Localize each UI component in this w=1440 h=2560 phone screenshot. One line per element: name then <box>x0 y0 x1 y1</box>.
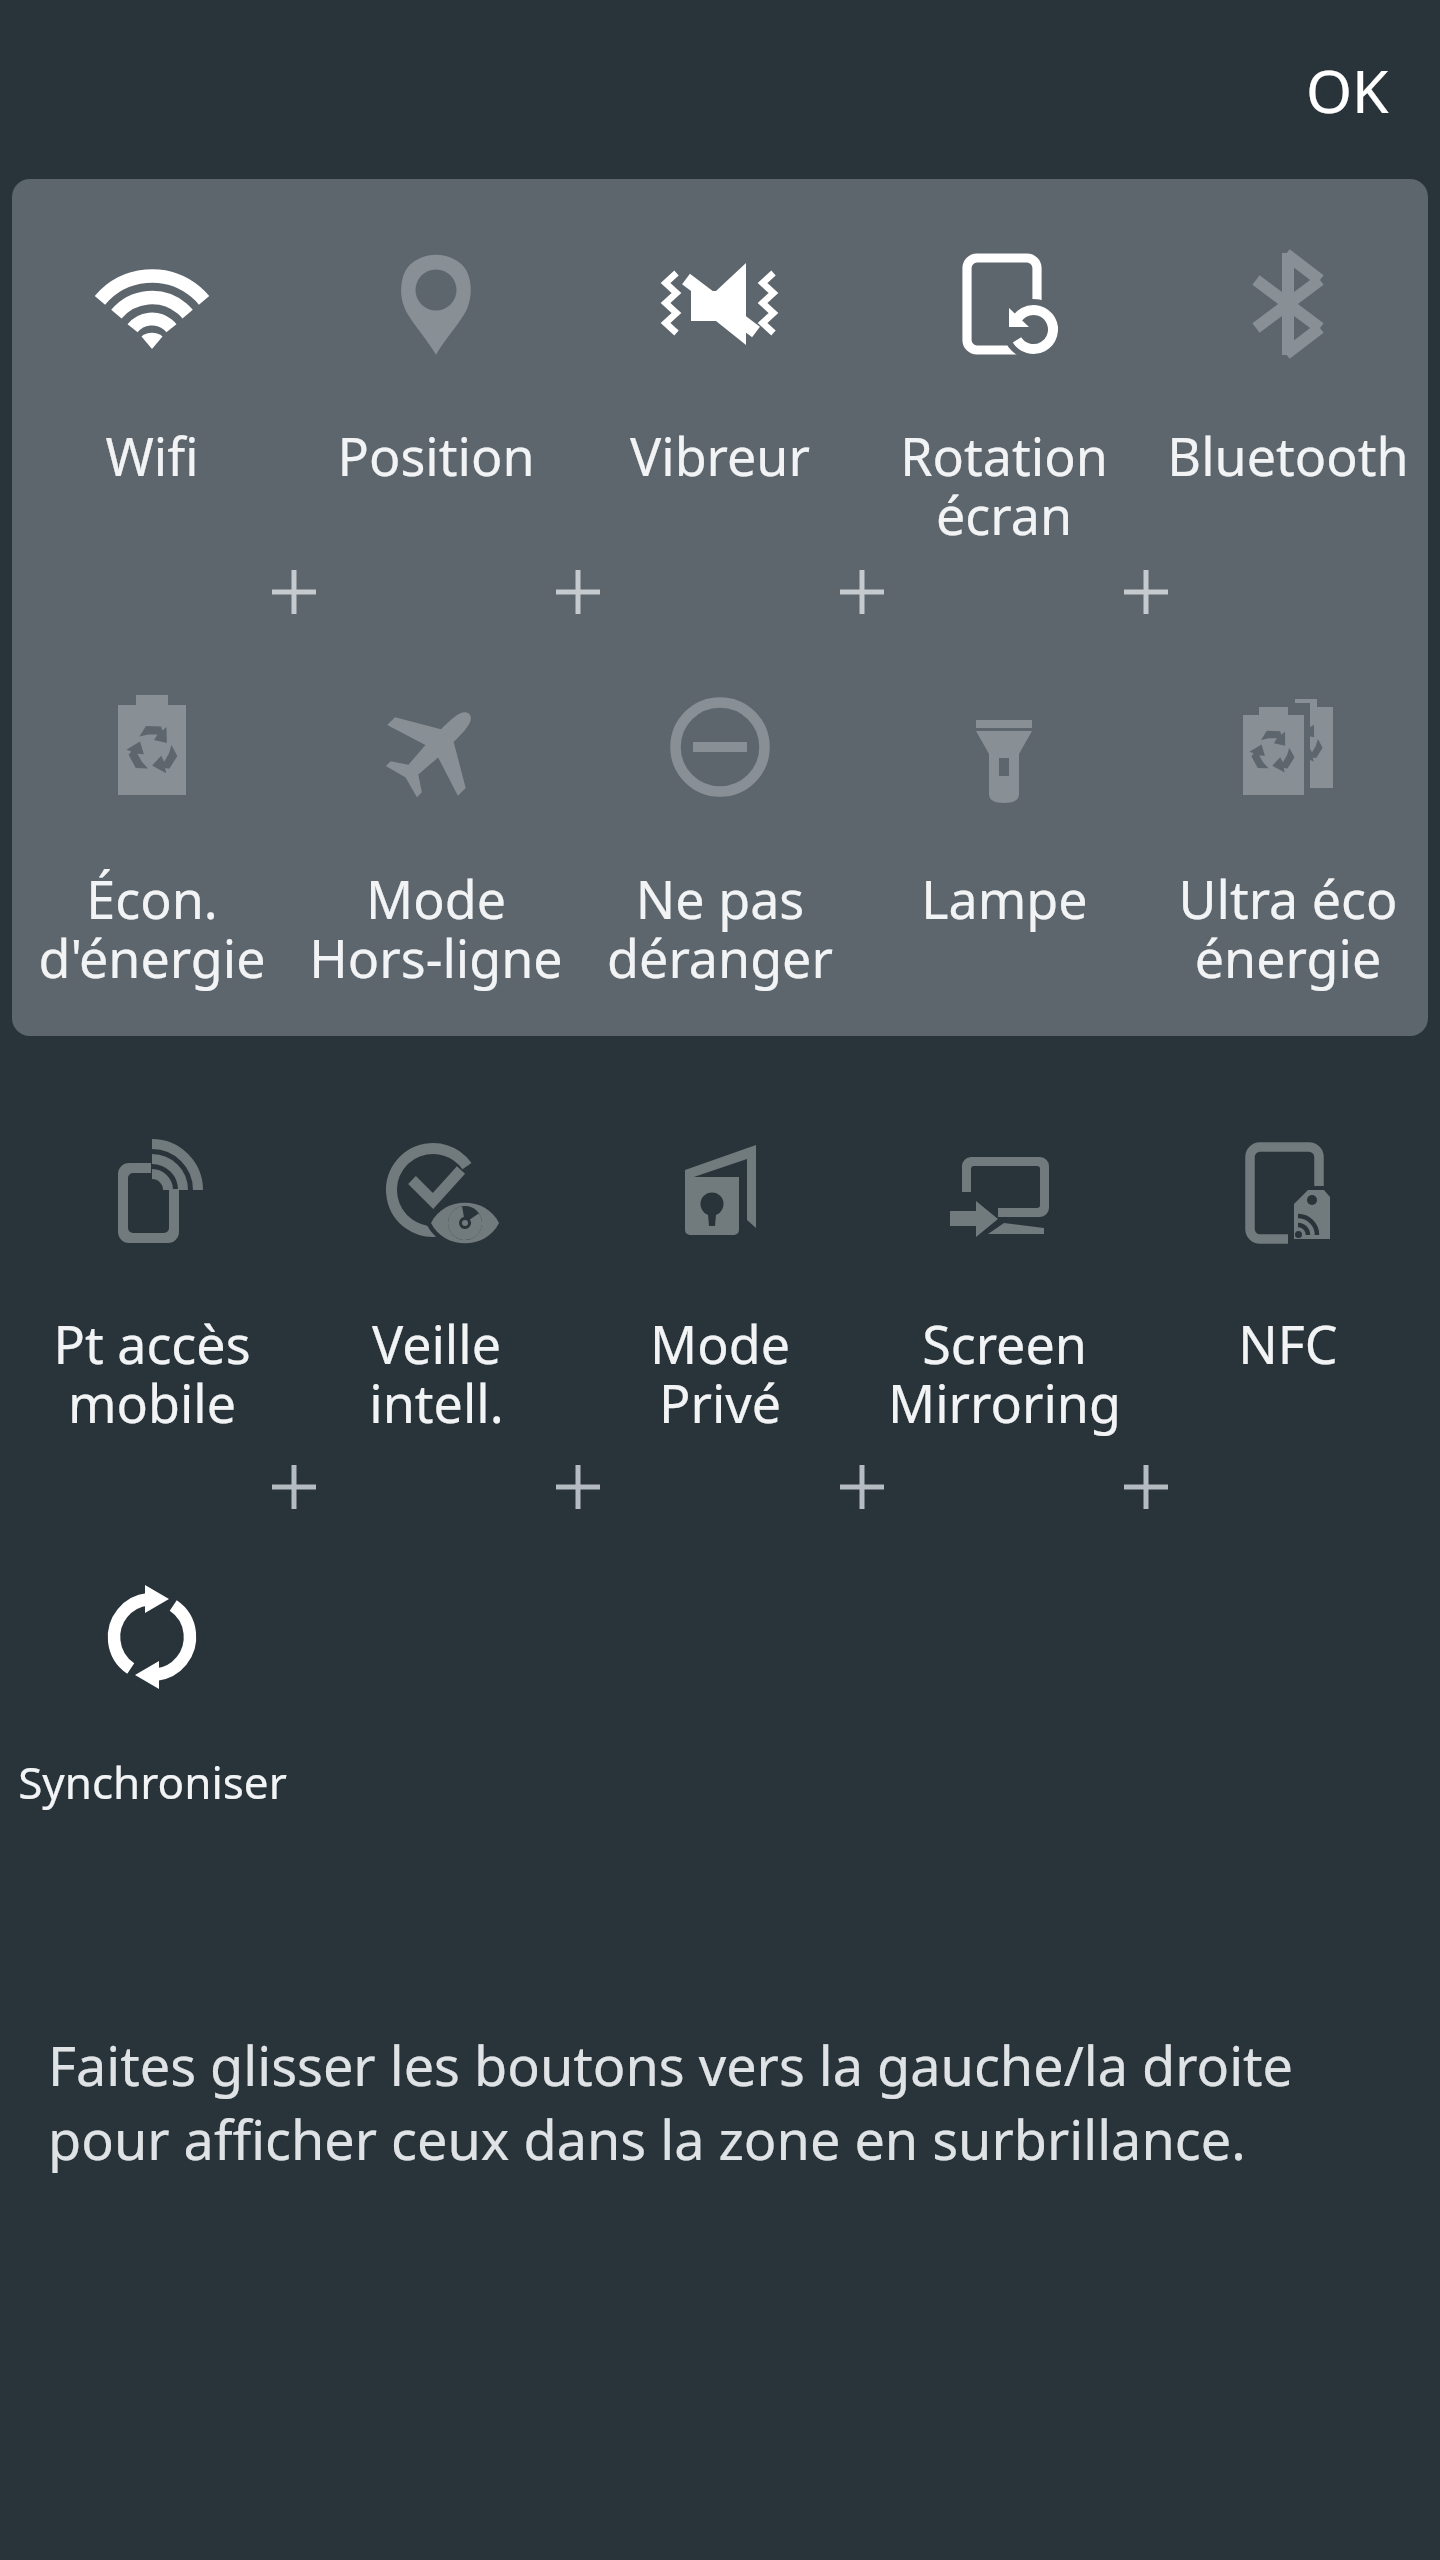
staticText: Veille intell. <box>369 1308 504 1438</box>
button[interactable]: Mode Hors-ligne <box>300 673 572 1003</box>
staticText: Ne pas déranger <box>607 863 833 993</box>
staticText: OK <box>1306 50 1389 130</box>
staticText: Synchroniser <box>18 1752 287 1812</box>
button[interactable]: Veille intell. <box>300 1118 572 1448</box>
staticText: NFC <box>1238 1308 1338 1379</box>
button[interactable]: Mode Privé <box>584 1118 856 1448</box>
button[interactable]: Ne pas déranger <box>584 673 856 1003</box>
button[interactable]: OK <box>1284 32 1411 148</box>
staticText: Screen Mirroring <box>888 1308 1121 1438</box>
button[interactable]: Lampe <box>868 673 1140 944</box>
button[interactable]: Écon. d'énergie <box>16 673 288 1003</box>
button[interactable]: Rotation écran <box>868 230 1140 560</box>
staticText: Bluetooth <box>1167 420 1409 491</box>
staticText: Pt accès mobile <box>53 1308 251 1438</box>
button[interactable]: Screen Mirroring <box>868 1118 1140 1448</box>
button[interactable]: Position <box>300 230 572 501</box>
staticText: Position <box>337 420 535 491</box>
button[interactable]: Bluetooth <box>1152 230 1424 501</box>
staticText: Lampe <box>921 863 1088 934</box>
button[interactable]: Wifi <box>16 230 288 501</box>
button[interactable]: Ajouter <box>538 1447 618 1527</box>
button[interactable]: Pt accès mobile <box>16 1118 288 1448</box>
staticText: Wifi <box>105 420 199 491</box>
button[interactable]: NFC <box>1152 1118 1424 1389</box>
button[interactable]: Ajouter <box>822 552 902 632</box>
staticText: Rotation écran <box>900 420 1108 550</box>
button[interactable]: Ultra éco énergie <box>1152 673 1424 1003</box>
staticText: Mode Hors-ligne <box>309 863 563 993</box>
button[interactable]: Ajouter <box>538 552 618 632</box>
button[interactable]: Synchroniser <box>2 1562 302 1822</box>
button[interactable]: Vibreur <box>584 230 856 501</box>
button[interactable]: Ajouter <box>1106 552 1186 632</box>
staticText: Vibreur <box>630 420 810 491</box>
button[interactable]: Ajouter <box>254 1447 334 1527</box>
staticText: Écon. d'énergie <box>38 863 266 993</box>
staticText: Mode Privé <box>650 1308 790 1438</box>
button[interactable]: Ajouter <box>254 552 334 632</box>
button[interactable]: Ajouter <box>1106 1447 1186 1527</box>
staticText: Faites glisser les boutons vers la gauch… <box>48 2028 1388 2176</box>
staticText: Ultra éco énergie <box>1178 863 1398 993</box>
button[interactable]: Ajouter <box>822 1447 902 1527</box>
